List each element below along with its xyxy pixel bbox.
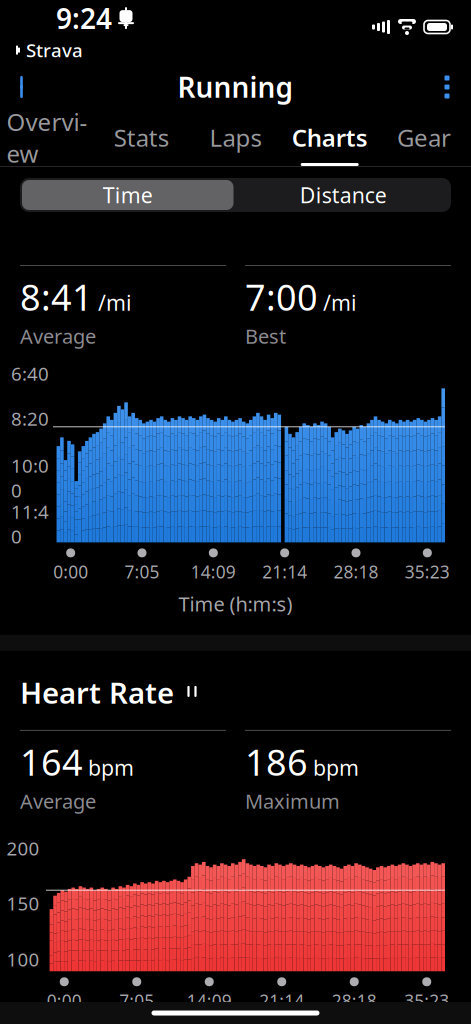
- staticText: 7:05: [119, 989, 154, 1012]
- staticText: 10:00: [11, 453, 49, 503]
- staticText: Heart Rate: [20, 673, 174, 712]
- staticText: /mi: [323, 288, 357, 317]
- staticText: 21:14: [262, 560, 307, 583]
- staticText: Gear: [397, 122, 451, 153]
- button[interactable]: Back: [0, 65, 48, 109]
- button[interactable]: Gear: [377, 112, 471, 166]
- staticText: Time (h:m:s): [178, 590, 292, 617]
- staticText: 0:00: [47, 989, 82, 1012]
- staticText: 7:00: [245, 273, 318, 321]
- staticText: 28:18: [332, 989, 377, 1012]
- staticText: Charts: [292, 122, 368, 153]
- staticText: 7:05: [124, 560, 159, 583]
- staticText: 164: [20, 738, 83, 786]
- staticText: 8:20: [11, 406, 49, 431]
- staticText: Running: [177, 68, 293, 106]
- staticText: 100: [6, 947, 39, 972]
- button[interactable]: Charts: [283, 112, 377, 166]
- staticText: Time: [103, 181, 153, 209]
- button[interactable]: Time: [20, 178, 235, 212]
- staticText: 200: [6, 836, 39, 861]
- staticText: Average: [20, 323, 96, 349]
- staticText: 9:24: [56, 0, 112, 37]
- staticText: Overview: [7, 106, 88, 169]
- staticText: 14:09: [191, 560, 236, 583]
- staticText: 14:09: [187, 989, 232, 1012]
- staticText: bpm: [88, 753, 134, 782]
- staticText: 8:41: [20, 273, 93, 321]
- staticText: Best: [245, 323, 286, 349]
- staticText: Average: [20, 788, 96, 814]
- button[interactable]: Overview: [0, 112, 94, 166]
- staticText: 35:23: [404, 989, 449, 1012]
- staticText: 21:14: [259, 989, 304, 1012]
- staticText: 0:00: [53, 560, 88, 583]
- button[interactable]: Distance: [235, 178, 451, 212]
- button[interactable]: Stats: [94, 112, 188, 166]
- staticText: 6:40: [11, 361, 49, 386]
- staticText: Strava: [26, 38, 83, 62]
- staticText: Maximum: [245, 788, 340, 814]
- staticText: Stats: [114, 122, 169, 153]
- button[interactable]: More options: [423, 65, 471, 109]
- staticText: Distance: [300, 181, 387, 209]
- staticText: Laps: [209, 122, 261, 153]
- staticText: 28:18: [333, 560, 378, 583]
- button[interactable]: Heart Rate: [0, 651, 221, 718]
- button[interactable]: Laps: [188, 112, 283, 166]
- staticText: /mi: [98, 288, 132, 317]
- staticText: 150: [6, 891, 39, 916]
- staticText: 186: [245, 738, 308, 786]
- staticText: 35:23: [405, 560, 450, 583]
- staticText: bpm: [313, 753, 359, 782]
- staticText: 11:40: [11, 499, 49, 549]
